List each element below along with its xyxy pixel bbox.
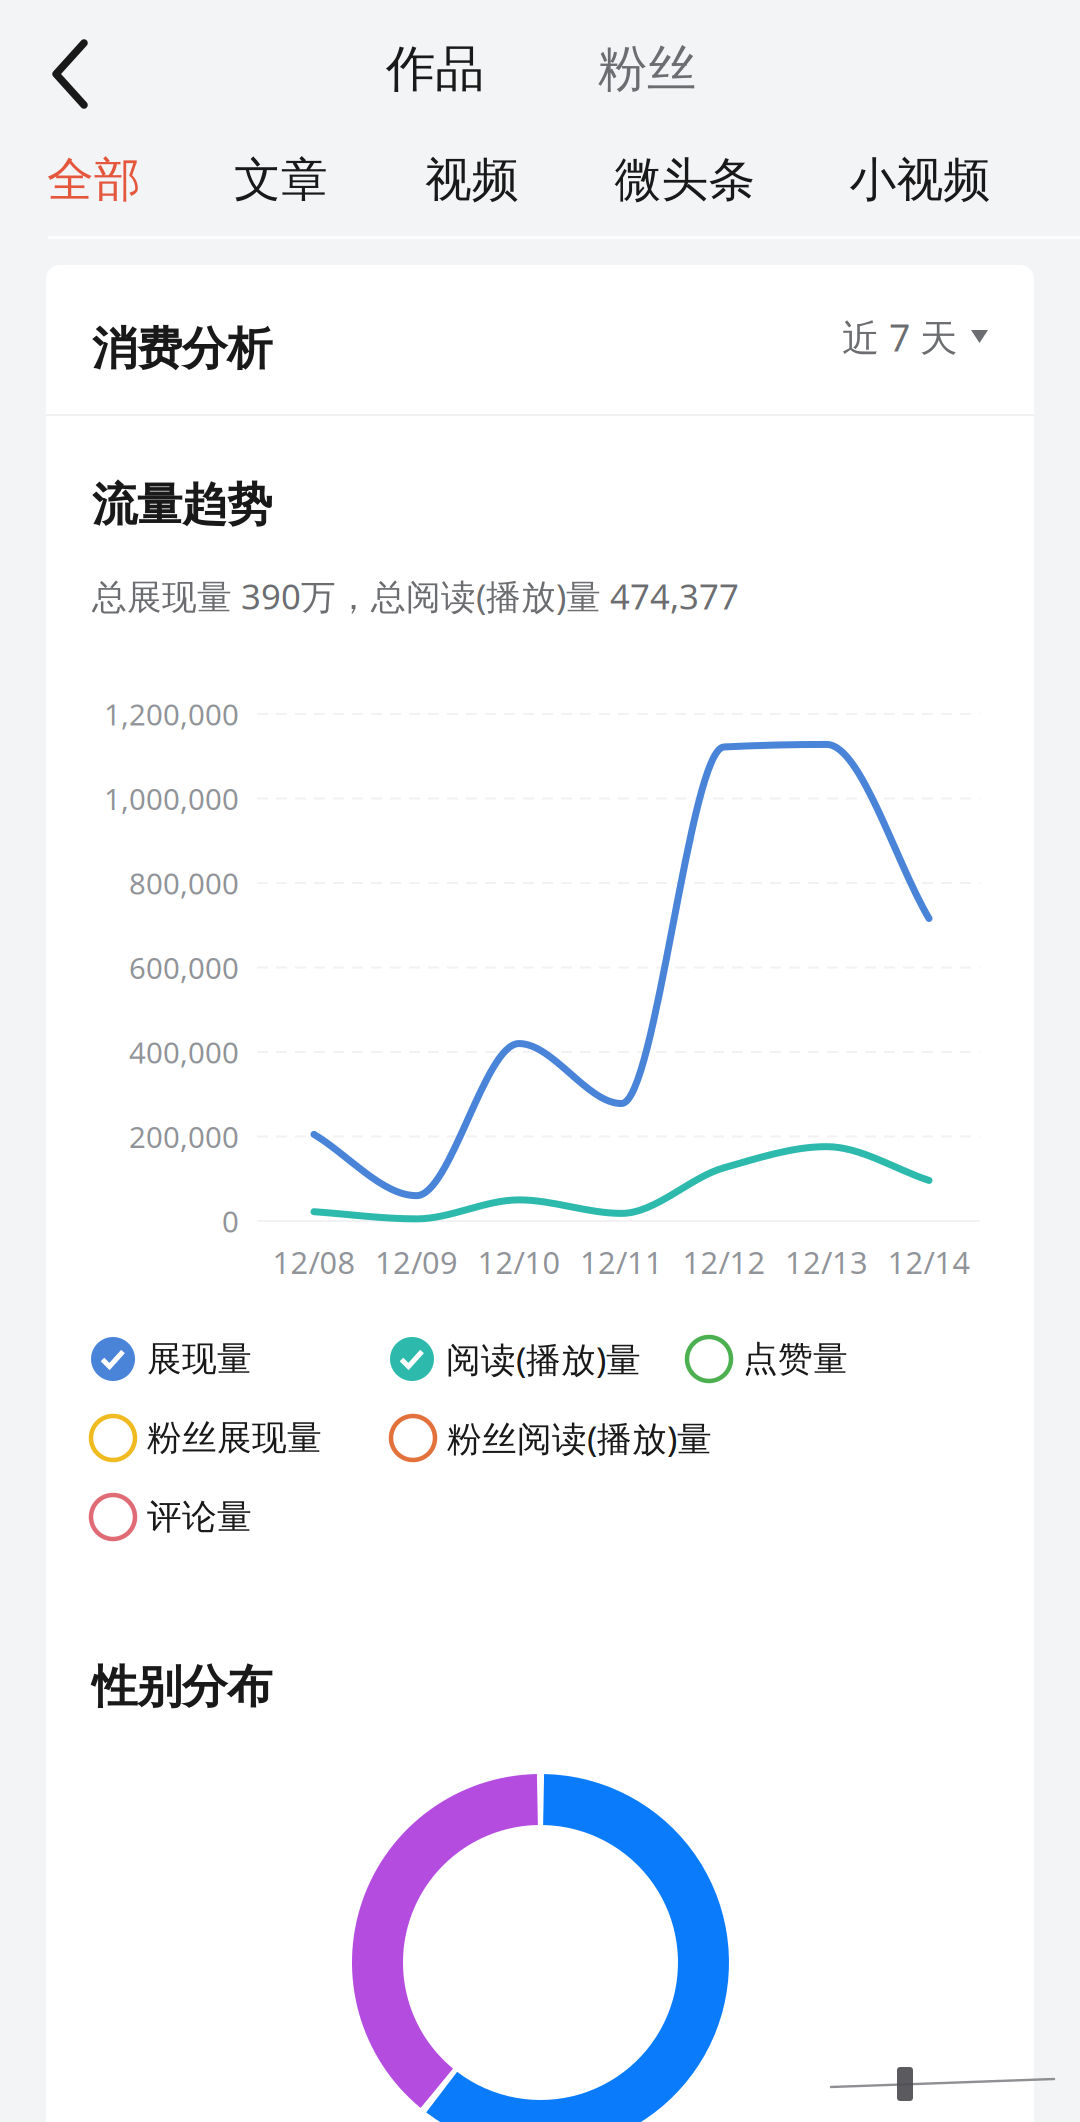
staticText: 12/13 xyxy=(785,1242,868,1282)
staticText: 粉丝 xyxy=(598,39,696,99)
staticText: 阅读(播放)量 xyxy=(446,1336,641,1382)
button[interactable]: 近 7 天 xyxy=(758,297,988,377)
staticText: 展现量 xyxy=(147,1338,252,1380)
staticText: 12/11 xyxy=(580,1242,663,1282)
staticText: 全部 xyxy=(47,151,141,209)
button[interactable]: 文章 xyxy=(181,132,381,228)
staticText: 600,000 xyxy=(129,948,239,987)
staticText: 作品 xyxy=(386,39,484,99)
staticText: 评论量 xyxy=(147,1496,252,1538)
staticText: 12/09 xyxy=(375,1242,458,1282)
button[interactable]: 视频 xyxy=(372,132,572,228)
button[interactable]: 评论量 xyxy=(91,1487,1060,1547)
button[interactable]: 点赞量 xyxy=(687,1329,1060,1389)
staticText: 粉丝阅读(播放)量 xyxy=(447,1415,712,1461)
staticText: 12/08 xyxy=(272,1242,355,1282)
staticText: 400,000 xyxy=(129,1032,239,1071)
button[interactable]: Back xyxy=(10,14,130,134)
button[interactable]: 微头条 xyxy=(585,132,785,228)
staticText: 1,200,000 xyxy=(104,694,239,733)
staticText: 性别分布 xyxy=(92,1659,272,1715)
staticText: 800,000 xyxy=(129,863,239,902)
staticText: 流量趋势 xyxy=(92,477,272,533)
staticText: 点赞量 xyxy=(743,1338,848,1380)
staticText: 12/10 xyxy=(477,1242,560,1282)
staticText: 200,000 xyxy=(129,1117,239,1156)
button[interactable]: 小视频 xyxy=(820,132,1020,228)
button[interactable]: 展现量 xyxy=(91,1329,1060,1389)
staticText: 文章 xyxy=(234,151,328,209)
staticText: 总展现量 390万，总阅读(播放)量 474,377 xyxy=(92,573,739,619)
staticText: 视频 xyxy=(425,151,519,209)
button[interactable]: 全部 xyxy=(0,132,194,228)
button[interactable]: 粉丝展现量 xyxy=(91,1408,1060,1468)
button[interactable]: 粉丝 xyxy=(562,19,732,119)
staticText: 12/14 xyxy=(887,1242,970,1282)
staticText: 近 7 天 xyxy=(842,312,957,362)
button[interactable]: 阅读(播放)量 xyxy=(390,1329,1060,1389)
staticText: 微头条 xyxy=(614,151,755,209)
staticText: 消费分析 xyxy=(92,321,272,377)
staticText: 0 xyxy=(222,1201,239,1240)
button[interactable]: 作品 xyxy=(350,19,520,119)
staticText: 12/12 xyxy=(682,1242,765,1282)
staticText: 1,000,000 xyxy=(104,779,239,818)
staticText: 小视频 xyxy=(849,151,990,209)
staticText: 粉丝展现量 xyxy=(147,1417,322,1459)
button[interactable]: 粉丝阅读(播放)量 xyxy=(391,1408,1060,1468)
